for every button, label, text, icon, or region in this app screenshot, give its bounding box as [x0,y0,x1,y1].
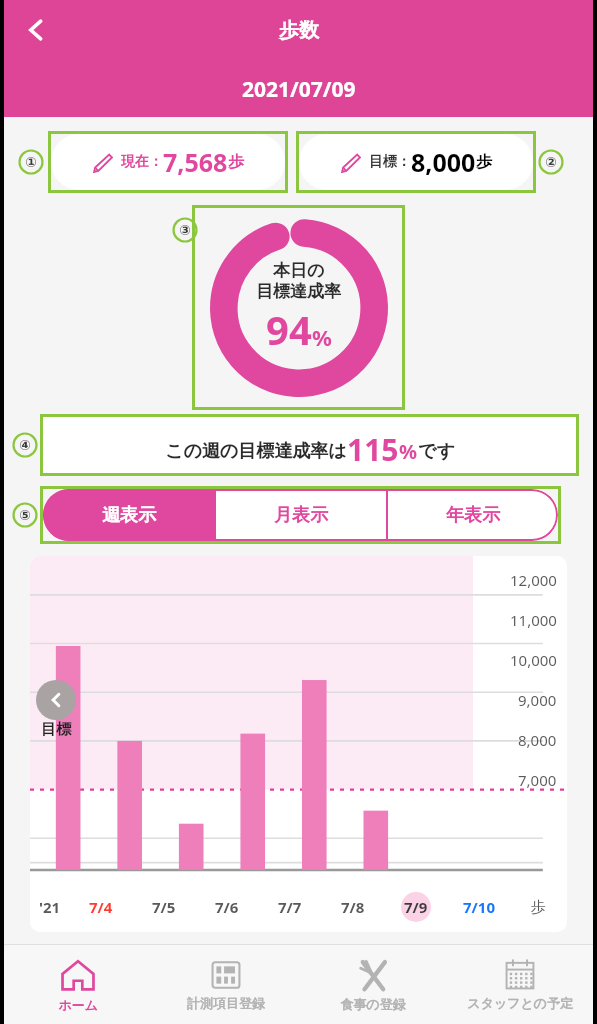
button[interactable]: 現在： [51,134,285,190]
button[interactable]: ホーム [4,945,152,1024]
staticText: '21 [39,897,61,917]
staticText: 115 [347,429,399,470]
staticText: ③ [179,222,191,238]
staticText: 計測項目登録 [187,995,265,1011]
staticText: % [399,438,418,465]
staticText: 目標 [41,720,71,739]
staticText: 歩 [476,152,492,172]
staticText: 7/9 [404,897,428,917]
staticText: この週の目標達成率は [165,440,347,463]
staticText: 歩 [531,898,546,917]
staticText: 7/10 [463,897,495,917]
staticText: % [312,322,332,352]
button[interactable]: 計測項目登録 [152,945,299,1024]
staticText: 年表示 [446,504,500,527]
button[interactable]: スタッフとの予定 [446,945,593,1024]
button[interactable]: Previous week [36,680,76,720]
staticText: 12,000 [510,570,557,590]
staticText: 7/4 [89,897,113,917]
staticText: 8,000 [518,730,557,750]
staticText: 目標： [369,153,411,171]
staticText: 10,000 [510,650,557,670]
staticText: 2021/07/09 [242,75,356,104]
staticText: 現在： [121,153,163,171]
button[interactable]: Back [12,6,60,54]
button[interactable]: 週表示 [43,489,214,541]
staticText: 週表示 [102,504,156,527]
staticText: ホーム [58,997,98,1013]
staticText: 7/8 [341,897,365,917]
staticText: ④ [19,437,31,453]
staticText: ① [25,154,37,170]
staticText: 7/5 [152,897,176,917]
staticText: 目標達成率 [256,281,341,302]
staticText: 歩数 [279,18,319,43]
staticText: 11,000 [510,610,557,630]
staticText: 7,568 [163,145,228,179]
staticText: 8,000 [411,145,476,179]
staticText: 7,000 [518,770,557,790]
staticText: です [418,440,455,463]
button[interactable]: 食事の登録 [299,945,446,1024]
staticText: スタッフとの予定 [467,995,573,1011]
button[interactable]: 月表示 [216,489,386,541]
staticText: 月表示 [274,504,328,527]
button[interactable]: この週の目標達成率は [43,417,576,473]
staticText: 食事の登録 [340,996,406,1012]
staticText: 94 [266,302,312,356]
staticText: ② [545,154,557,170]
staticText: 歩 [228,152,244,172]
staticText: 本日の [273,260,325,281]
button[interactable]: 目標： [299,134,533,190]
staticText: 7/6 [215,897,239,917]
button[interactable]: 年表示 [388,489,558,541]
staticText: 9,000 [518,690,557,710]
staticText: ⑤ [19,507,31,523]
staticText: 7/7 [278,897,302,917]
